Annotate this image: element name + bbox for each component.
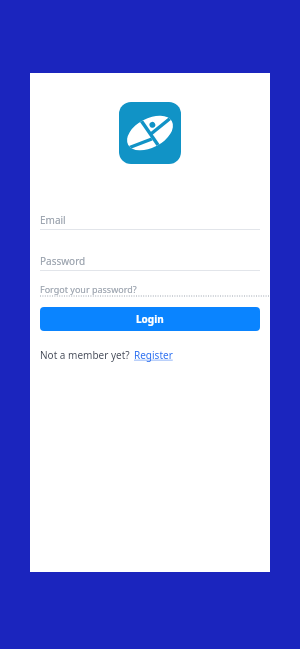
- button[interactable]: Forgot your password?: [30, 281, 270, 297]
- staticText: Not a member yet?: [40, 348, 130, 362]
- staticText: Password: [40, 254, 86, 268]
- staticText: Forgot your password?: [40, 283, 137, 295]
- button[interactable]: Register: [134, 347, 173, 363]
- button[interactable]: Login: [40, 307, 260, 331]
- staticText: Register: [134, 348, 173, 362]
- staticText: Email: [40, 213, 66, 227]
- button[interactable]: Email: [30, 210, 270, 230]
- button[interactable]: Password: [30, 251, 270, 271]
- staticText: Login: [136, 312, 164, 326]
- other: App logo: [119, 102, 181, 164]
